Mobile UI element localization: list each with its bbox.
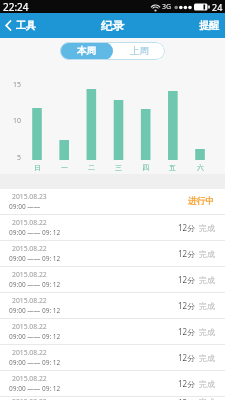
staticText: 2015.08.22 [12,270,47,279]
staticText: 完成 [199,353,215,363]
staticText: 09:00 —— 09: 12 [9,280,61,289]
staticText: 完成 [199,249,215,259]
staticText: 本周 [77,45,96,57]
button[interactable]: 本周 [60,42,113,60]
staticText: 三 [115,163,122,172]
staticText: 二 [88,163,95,172]
staticText: 2015.08.22 [12,397,47,400]
button[interactable]: 2015.08.22 [0,267,225,293]
button[interactable]: 2015.08.22 [0,241,225,267]
staticText: 完成 [199,223,215,233]
button[interactable]: 2015.08.23 [0,189,225,215]
staticText: 15 [13,80,22,90]
staticText: 四 [142,163,149,172]
button[interactable]: 工具 [0,17,40,34]
staticText: 一 [61,163,68,172]
staticText: 12分 [178,274,196,285]
staticText: 12分 [178,397,196,400]
staticText: 完成 [199,397,215,400]
staticText: 进行中 [188,196,215,207]
staticText: 12分 [178,300,196,311]
button[interactable]: 2015.08.22 [0,215,225,241]
staticText: 六 [197,163,204,172]
staticText: 24 [212,1,223,13]
button[interactable]: 2015.08.22 [0,371,225,397]
staticText: 2015.08.23 [12,192,47,201]
button[interactable]: 2015.08.22 [0,345,225,371]
staticText: 日 [34,163,41,172]
staticText: 09:00 —— 09: 12 [9,228,61,237]
staticText: 09:00 —— 09: 12 [9,384,61,393]
staticText: 3G [162,2,172,12]
staticText: 10 [13,116,22,126]
button[interactable]: 提醒 [193,13,225,38]
button[interactable]: 2015.08.22 [0,319,225,345]
staticText: 五 [169,163,176,172]
staticText: 2015.08.22 [12,244,47,253]
button[interactable]: 2015.08.22 [0,293,225,319]
staticText: 12分 [178,222,196,233]
staticText: 完成 [199,301,215,311]
staticText: 5 [17,153,22,163]
staticText: 12分 [178,326,196,337]
staticText: 09:00 —— 09: 12 [9,332,61,341]
staticText: 12分 [178,378,196,389]
staticText: 2015.08.22 [12,348,47,357]
button[interactable]: 2015.08.22 [0,397,225,400]
staticText: 12分 [178,352,196,363]
staticText: 上周 [130,45,149,57]
staticText: 22:24 [3,0,29,13]
staticText: 完成 [199,379,215,389]
staticText: 09:00 —— 09: 12 [9,306,61,315]
staticText: 完成 [199,275,215,285]
staticText: 09:00 —— [9,202,41,211]
staticText: 09:00 —— 09: 12 [9,254,61,263]
staticText: 2015.08.22 [12,296,47,305]
staticText: 工具 [16,19,36,32]
staticText: 纪录 [101,19,124,33]
staticText: 完成 [199,327,215,337]
staticText: 12分 [178,248,196,259]
staticText: 2015.08.22 [12,322,47,331]
staticText: 2015.08.22 [12,374,47,383]
staticText: 2015.08.22 [12,218,47,227]
button[interactable]: 上周 [113,42,165,60]
staticText: 09:00 —— 09: 12 [9,358,61,367]
staticText: 提醒 [199,19,219,32]
